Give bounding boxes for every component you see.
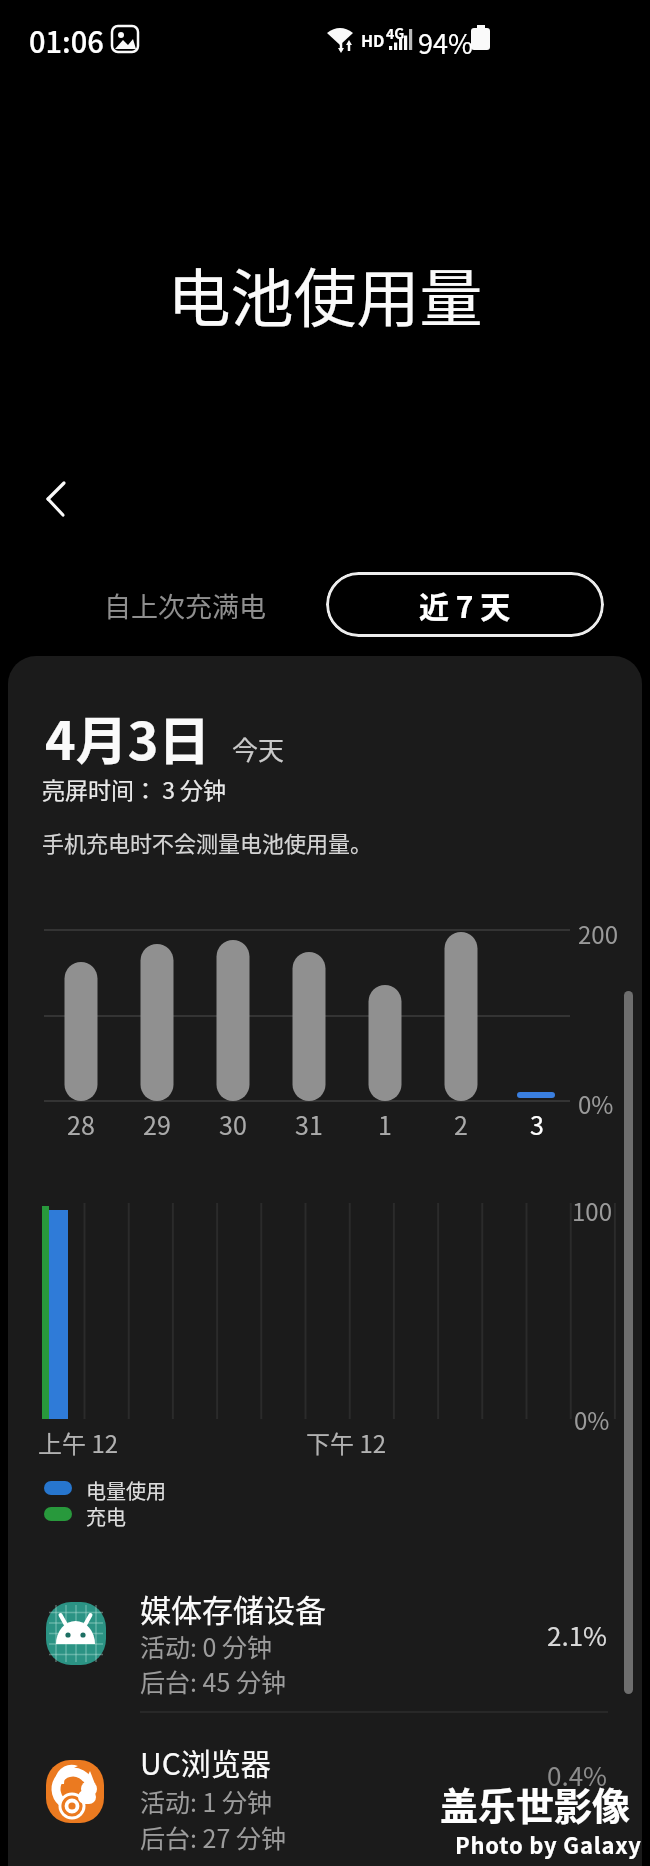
staticText: 2.1%: [547, 1616, 608, 1654]
staticText: 手机充电时不会测量电池使用量。: [42, 826, 373, 858]
staticText: 94%: [418, 23, 473, 62]
button[interactable]: [30, 1580, 620, 1705]
staticText: 后台: 45 分钟: [140, 1663, 286, 1699]
staticText: 4月3日: [45, 700, 211, 775]
staticText: 01:06: [29, 19, 104, 61]
staticText: 活动: 1 分钟: [140, 1783, 273, 1819]
staticText: 3: [530, 1106, 544, 1142]
staticText: 充电: [86, 1502, 126, 1531]
button[interactable]: [30, 1745, 620, 1866]
staticText: 上午 12: [38, 1425, 119, 1460]
staticText: 30: [219, 1106, 247, 1142]
staticText: 活动: 0 分钟: [140, 1628, 273, 1664]
button[interactable]: 近 7 天: [326, 572, 604, 637]
staticText: 31: [295, 1106, 323, 1142]
button[interactable]: 01:06: [29, 19, 104, 61]
staticText: HD: [361, 28, 385, 51]
button[interactable]: 自上次充满电: [90, 578, 280, 633]
staticText: Photo by Galaxy: [455, 1828, 642, 1860]
staticText: 自上次充满电: [104, 586, 266, 625]
staticText: 1: [378, 1106, 392, 1142]
staticText: 0%: [578, 1086, 614, 1121]
staticText: 亮屏时间： 3 分钟: [42, 772, 227, 805]
button[interactable]: [28, 470, 88, 530]
staticText: 后台: 27 分钟: [140, 1819, 286, 1855]
staticText: UC浏览器: [140, 1740, 271, 1783]
staticText: 100: [572, 1193, 612, 1228]
staticText: 下午 12: [306, 1425, 387, 1460]
staticText: 电量使用: [86, 1476, 166, 1505]
staticText: 电池使用量: [0, 248, 650, 339]
staticText: 29: [143, 1106, 171, 1142]
staticText: 今天: [232, 730, 285, 768]
staticText: 28: [67, 1106, 95, 1142]
staticText: 0%: [574, 1402, 610, 1437]
staticText: 媒体存储设备: [140, 1586, 326, 1631]
staticText: 2: [454, 1106, 468, 1142]
staticText: 4G: [386, 23, 405, 43]
staticText: 200: [578, 916, 618, 951]
staticText: 近 7 天: [419, 583, 511, 626]
staticText: 0.4%: [547, 1756, 608, 1794]
staticText: 盖乐世影像: [440, 1776, 631, 1831]
